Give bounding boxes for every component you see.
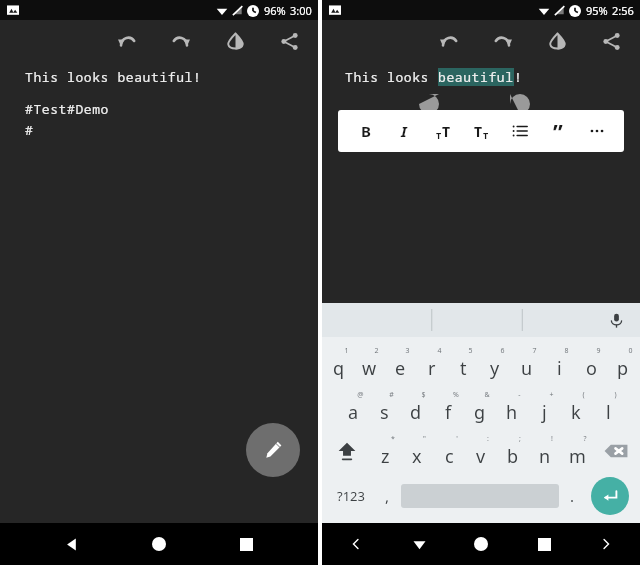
button[interactable]: # <box>369 385 400 429</box>
button[interactable]: % <box>432 385 464 429</box>
button[interactable]: Shift <box>324 429 369 473</box>
staticText: T <box>436 129 442 141</box>
button[interactable]: 5 <box>447 341 479 385</box>
staticText: ) <box>614 390 617 400</box>
staticText: " <box>423 434 426 444</box>
button[interactable]: Back <box>52 524 92 564</box>
staticText: 7 <box>532 346 537 356</box>
button[interactable]: Home <box>461 524 501 564</box>
staticText: @ <box>357 390 364 400</box>
button[interactable]: 7 <box>511 341 543 385</box>
staticText: This looks beautiful! <box>25 68 202 86</box>
staticText: r <box>428 356 436 381</box>
staticText: $ <box>421 390 426 400</box>
staticText: * <box>391 434 395 444</box>
button[interactable]: Italic <box>387 114 421 148</box>
button[interactable]: * <box>369 429 401 473</box>
button[interactable]: 4 <box>416 341 447 385</box>
button[interactable]: ) <box>592 385 624 429</box>
button[interactable]: - <box>496 385 528 429</box>
staticText: d <box>410 400 422 425</box>
staticText: T <box>442 122 451 141</box>
staticText: ; <box>519 434 521 444</box>
button[interactable]: Backspace <box>593 429 638 473</box>
staticText: beautiful <box>438 68 514 86</box>
button[interactable]: 1 <box>323 341 354 385</box>
button[interactable]: ?123 <box>328 473 374 519</box>
staticText: 8 <box>564 346 569 356</box>
button[interactable]: Increase text size <box>464 114 498 148</box>
staticText: n <box>539 444 551 469</box>
button[interactable]: Quote <box>541 114 575 148</box>
button[interactable]: Undo <box>434 26 464 56</box>
staticText: + <box>549 390 554 400</box>
staticText: i <box>557 356 562 381</box>
staticText: 96% <box>264 3 286 18</box>
button[interactable]: 6 <box>479 341 511 385</box>
button[interactable]: Toggle theme <box>542 26 572 56</box>
button[interactable]: Undo <box>112 26 142 56</box>
staticText: b <box>507 444 519 469</box>
staticText: 3 <box>405 346 410 356</box>
button[interactable]: Enter <box>591 477 629 515</box>
staticText: 95% <box>586 3 608 18</box>
button[interactable]: Share <box>596 26 626 56</box>
button[interactable]: Bulleted list <box>503 114 537 148</box>
staticText: a <box>348 400 359 425</box>
button[interactable]: Voice input <box>602 306 630 334</box>
button[interactable]: Redo <box>166 26 196 56</box>
button[interactable]: Hide keyboard <box>399 524 439 564</box>
button[interactable]: @ <box>338 385 369 429</box>
button[interactable]: ( <box>560 385 592 429</box>
staticText: z <box>381 444 390 469</box>
button[interactable]: Next <box>586 524 626 564</box>
staticText: g <box>474 400 486 425</box>
button[interactable]: Toggle theme <box>220 26 250 56</box>
button[interactable]: 2 <box>354 341 385 385</box>
button[interactable]: " <box>401 429 433 473</box>
staticText: e <box>395 356 406 381</box>
staticText: h <box>506 400 518 425</box>
button[interactable]: Edit note <box>246 423 300 477</box>
button[interactable]: $ <box>400 385 432 429</box>
button[interactable]: ; <box>497 429 529 473</box>
staticText: k <box>571 400 581 425</box>
button[interactable]: ' <box>433 429 465 473</box>
button[interactable]: Recents <box>524 524 564 564</box>
staticText: s <box>380 400 389 425</box>
button[interactable]: Home <box>139 524 179 564</box>
staticText: 6 <box>500 346 505 356</box>
staticText: v <box>476 444 486 469</box>
button[interactable]: Previous <box>336 524 376 564</box>
button[interactable]: Decrease text size <box>426 114 460 148</box>
staticText: ” <box>553 116 563 146</box>
staticText: p <box>617 356 629 381</box>
staticText: 3:00 <box>290 3 312 18</box>
button[interactable]: Bold <box>349 114 383 148</box>
staticText: t <box>460 356 467 381</box>
button[interactable]: Redo <box>488 26 518 56</box>
button[interactable]: ? <box>561 429 593 473</box>
button[interactable]: 9 <box>575 341 607 385</box>
button[interactable]: More options <box>580 114 614 148</box>
button[interactable]: ! <box>529 429 561 473</box>
staticText: f <box>445 400 452 425</box>
staticText: # <box>389 390 394 400</box>
staticText: ( <box>582 390 585 400</box>
staticText: u <box>521 356 533 381</box>
button[interactable]: + <box>528 385 560 429</box>
button[interactable]: Share <box>274 26 304 56</box>
button[interactable]: 3 <box>385 341 416 385</box>
button[interactable]: 8 <box>543 341 575 385</box>
button[interactable]: 0 <box>607 341 639 385</box>
button[interactable]: , <box>374 473 401 519</box>
staticText: & <box>484 390 490 400</box>
button[interactable]: : <box>465 429 497 473</box>
button[interactable]: & <box>464 385 496 429</box>
staticText: , <box>385 486 390 506</box>
staticText: I <box>401 121 407 141</box>
staticText: T <box>483 129 489 141</box>
button[interactable]: Recents <box>226 524 266 564</box>
button[interactable]: . <box>559 473 586 519</box>
